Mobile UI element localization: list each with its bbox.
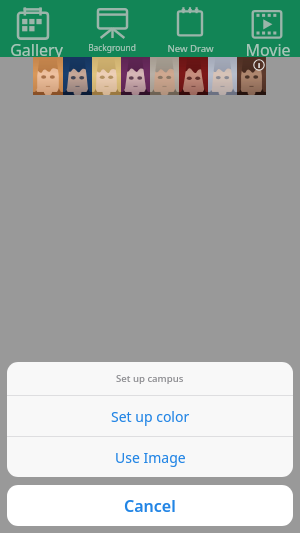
staticText: Movie — [245, 39, 291, 61]
button[interactable]: Gallery — [0, 0, 70, 57]
staticText: Background — [88, 42, 136, 53]
staticText: Set up campus — [116, 372, 184, 385]
button[interactable]: New Draw — [153, 0, 227, 57]
staticText: New Draw — [167, 42, 214, 55]
button[interactable]: Movie — [230, 0, 300, 57]
button[interactable]: Cancel — [7, 485, 293, 526]
staticText: Use Image — [115, 448, 186, 467]
button[interactable]: Use Image — [7, 437, 293, 477]
button[interactable]: Info — [253, 59, 265, 71]
staticText: Gallery — [10, 39, 63, 61]
staticText: Set up color — [111, 407, 190, 426]
button[interactable]: Set up color — [7, 396, 293, 436]
button[interactable]: Background — [75, 0, 149, 57]
staticText: Cancel — [124, 495, 176, 517]
staticText: i — [258, 60, 261, 70]
